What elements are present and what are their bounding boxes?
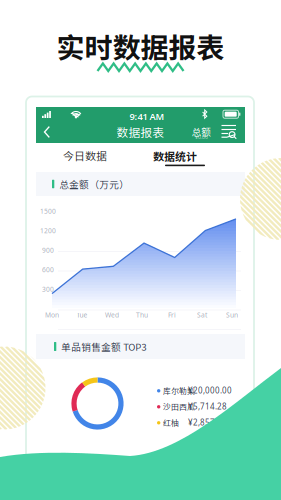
staticText: 1500 (40, 207, 56, 216)
staticText: Mon (45, 311, 59, 319)
staticText: 红柚 (163, 417, 179, 428)
staticText: Fri (168, 311, 176, 319)
staticText: 300 (42, 285, 54, 294)
button[interactable]: 数据统计 (145, 141, 205, 170)
staticText: ¥5,714.28 (188, 401, 227, 412)
staticText: 单品销售金额 TOP3 (61, 339, 146, 353)
staticText: 沙田西瓜 (163, 401, 195, 412)
staticText: Thu (136, 311, 148, 319)
staticText: 600 (42, 265, 54, 274)
staticText: 实时数据报表 (56, 26, 224, 66)
staticText: 数据报表 (116, 123, 164, 140)
staticText: ¥20,000.00 (188, 385, 232, 396)
staticText: ¥2,857.14 (188, 417, 227, 428)
staticText: ¥0.00 (195, 133, 208, 140)
staticText: 1200 (40, 226, 56, 235)
staticText: Sun (226, 311, 238, 319)
staticText: Wed (105, 311, 119, 319)
staticText: 数据统计 (153, 148, 197, 164)
staticText: 今日数据 (63, 148, 107, 163)
staticText: Sat (197, 311, 207, 319)
staticText: 总额 (191, 125, 211, 138)
button[interactable]: Search records (219, 121, 239, 143)
staticText: 900 (42, 246, 54, 255)
staticText: Tue (76, 311, 87, 319)
button[interactable]: 今日数据 (55, 141, 115, 170)
button[interactable]: 总额 (189, 121, 213, 143)
staticText: 库尔勒梨 (163, 385, 195, 396)
button[interactable]: Back (38, 121, 56, 143)
staticText: 总金额（万元） (59, 177, 129, 191)
staticText: 9:41 AM (129, 110, 164, 123)
